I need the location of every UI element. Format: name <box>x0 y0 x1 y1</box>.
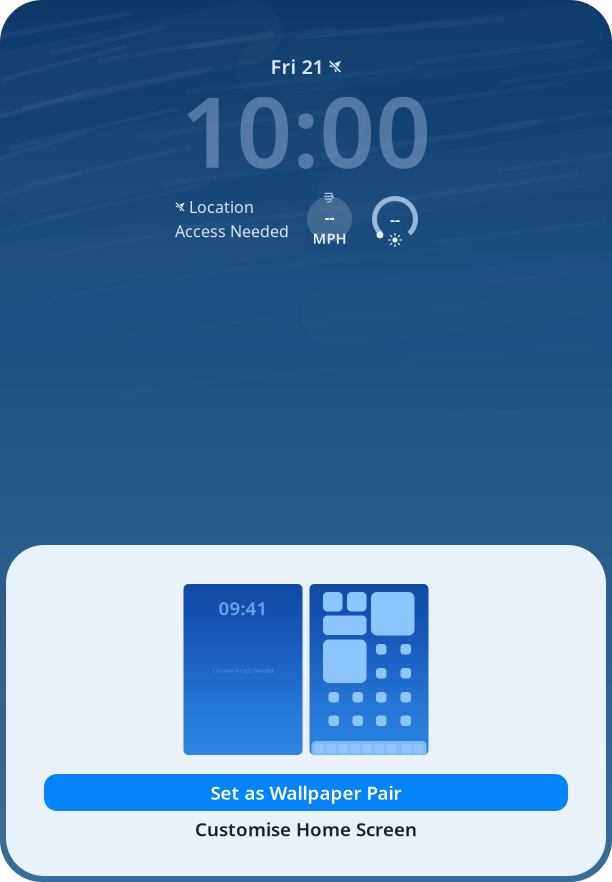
staticText: -- <box>324 206 334 227</box>
staticText: -- <box>390 208 400 230</box>
button[interactable]: 09:41 <box>183 584 302 755</box>
button[interactable] <box>309 584 428 755</box>
staticText: Customise Home Screen <box>195 817 417 841</box>
staticText: 09:41 <box>218 596 267 620</box>
button[interactable]: Customise Home Screen <box>44 815 568 843</box>
staticText: MPH <box>312 228 346 248</box>
staticText: Access Needed <box>175 220 289 242</box>
staticText: 10:00 <box>180 65 431 195</box>
staticText: Set as Wallpaper Pair <box>210 780 401 805</box>
staticText: Fri 21 <box>270 53 323 80</box>
staticText: Location Access Needed <box>213 667 273 674</box>
staticText: Location <box>189 196 254 217</box>
button[interactable]: Set as Wallpaper Pair <box>44 774 568 811</box>
